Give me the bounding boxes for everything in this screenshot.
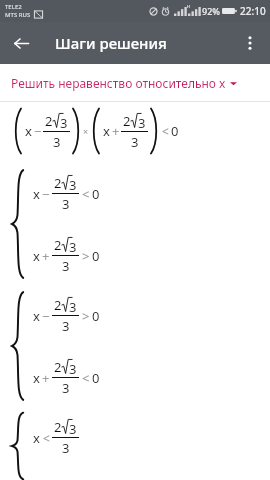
- staticText: TELE2: [5, 3, 22, 11]
- staticText: 2: [54, 174, 62, 192]
- staticText: 2: [54, 296, 62, 314]
- staticText: 3: [53, 133, 61, 151]
- staticText: 3: [69, 238, 77, 256]
- staticText: x: [103, 122, 110, 140]
- staticText: 3: [62, 317, 70, 335]
- staticText: 3: [131, 133, 139, 151]
- staticText: 92%: [202, 5, 220, 17]
- staticText: Решить неравенство относительно x: [11, 75, 226, 91]
- staticText: x: [33, 429, 40, 447]
- staticText: 2: [54, 236, 62, 254]
- staticText: 2: [45, 112, 53, 130]
- staticText: 2: [54, 358, 62, 376]
- staticText: >: [82, 307, 90, 325]
- staticText: +: [42, 369, 50, 387]
- staticText: 3: [62, 379, 70, 397]
- staticText: 0: [92, 369, 100, 387]
- staticText: Шаги решения: [55, 33, 167, 53]
- staticText: 0: [92, 185, 100, 203]
- staticText: x: [33, 185, 40, 203]
- staticText: 3: [69, 176, 77, 194]
- staticText: 3: [60, 114, 68, 132]
- staticText: <: [82, 369, 90, 387]
- staticText: 0: [92, 307, 100, 325]
- staticText: 3: [69, 360, 77, 378]
- staticText: +: [112, 122, 120, 140]
- staticText: 2: [123, 112, 131, 130]
- staticText: x: [33, 307, 40, 325]
- staticText: 3: [62, 439, 70, 457]
- staticText: 0: [92, 247, 100, 265]
- staticText: x: [33, 369, 40, 387]
- staticText: ×: [83, 125, 89, 137]
- staticText: 22:10: [240, 4, 266, 18]
- staticText: −: [34, 122, 42, 140]
- staticText: 3: [69, 298, 77, 316]
- staticText: −: [42, 185, 50, 203]
- staticText: x: [33, 247, 40, 265]
- staticText: H: [187, 4, 191, 9]
- staticText: 0: [171, 122, 179, 140]
- button[interactable]: Решить неравенство относительно x: [0, 64, 270, 101]
- staticText: 3: [62, 257, 70, 275]
- staticText: +: [42, 247, 50, 265]
- staticText: MTS RUS: [5, 11, 31, 19]
- staticText: <: [43, 430, 50, 446]
- button[interactable]: Back: [4, 26, 38, 60]
- button[interactable]: More options: [233, 26, 267, 60]
- staticText: 3: [62, 195, 70, 213]
- staticText: −: [42, 307, 50, 325]
- staticText: 2: [54, 418, 62, 436]
- staticText: 3: [69, 420, 77, 438]
- staticText: >: [82, 247, 90, 265]
- staticText: <: [82, 185, 90, 203]
- staticText: 3: [138, 114, 146, 132]
- staticText: <: [162, 123, 169, 139]
- staticText: x: [25, 122, 32, 140]
